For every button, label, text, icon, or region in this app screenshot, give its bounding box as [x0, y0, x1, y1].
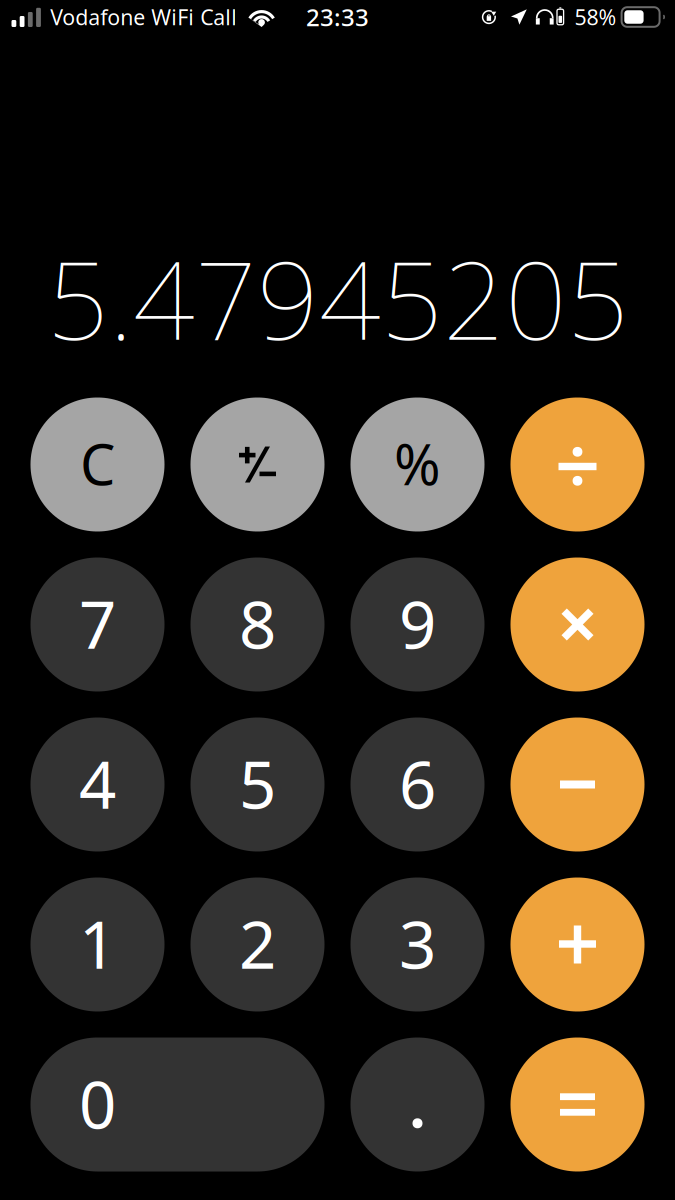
button[interactable]: 2: [190, 877, 324, 1011]
button[interactable]: Plus: [510, 877, 644, 1011]
button[interactable]: 5: [190, 717, 324, 851]
staticText: 5: [239, 740, 276, 827]
staticText: 8: [239, 580, 276, 667]
button[interactable]: 7: [30, 557, 164, 691]
button[interactable]: 9: [350, 557, 484, 691]
staticText: 1: [79, 900, 116, 987]
staticText: Vodafone WiFi Call: [50, 3, 237, 31]
staticText: 3: [399, 900, 436, 987]
staticText: 9: [399, 580, 436, 667]
staticText: 7: [79, 580, 116, 667]
button[interactable]: 1: [30, 877, 164, 1011]
button[interactable]: 8: [190, 557, 324, 691]
staticText: 0: [79, 1060, 116, 1147]
staticText: 58%: [575, 3, 617, 31]
staticText: 23:33: [306, 1, 369, 33]
button[interactable]: Decimal point: [350, 1037, 484, 1171]
button[interactable]: Divide: [510, 397, 644, 531]
button[interactable]: Equals: [510, 1037, 644, 1171]
staticText: %: [394, 426, 441, 501]
staticText: 2: [239, 900, 276, 987]
staticText: 5.47945205: [47, 226, 629, 369]
button[interactable]: Multiply: [510, 557, 644, 691]
button[interactable]: %: [350, 397, 484, 531]
staticText: 6: [399, 740, 436, 827]
button[interactable]: Plus minus: [190, 397, 324, 531]
button[interactable]: 3: [350, 877, 484, 1011]
staticText: C: [80, 426, 115, 501]
button[interactable]: Minus: [510, 717, 644, 851]
staticText: 4: [79, 740, 116, 827]
button[interactable]: 6: [350, 717, 484, 851]
button[interactable]: 4: [30, 717, 164, 851]
button[interactable]: 0: [30, 1037, 324, 1171]
button[interactable]: C: [30, 397, 164, 531]
